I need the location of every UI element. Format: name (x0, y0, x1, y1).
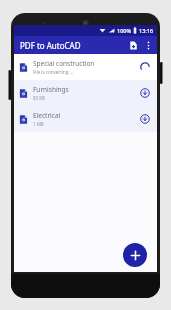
staticText: Electrical (33, 111, 61, 120)
button[interactable]: Converting (138, 60, 152, 74)
staticText: Special construction (33, 59, 95, 68)
button[interactable]: Download (138, 112, 152, 126)
button[interactable]: Download (138, 86, 152, 100)
button[interactable]: More options (141, 38, 155, 52)
staticText: File is converting ... (33, 69, 74, 75)
staticText: Furnishings (33, 85, 69, 94)
staticText: PDF to AutoCAD (20, 40, 81, 51)
button[interactable]: Add document (125, 37, 141, 53)
button[interactable]: Add file (123, 243, 147, 267)
staticText: 100% (117, 27, 132, 34)
button[interactable]: Special construction (14, 54, 157, 80)
staticText: 13:16 (139, 27, 154, 34)
staticText: 83 KB (33, 95, 46, 101)
button[interactable]: Electrical (14, 106, 157, 132)
button[interactable]: Furnishings (14, 80, 157, 106)
staticText: 1 MB (33, 121, 44, 127)
